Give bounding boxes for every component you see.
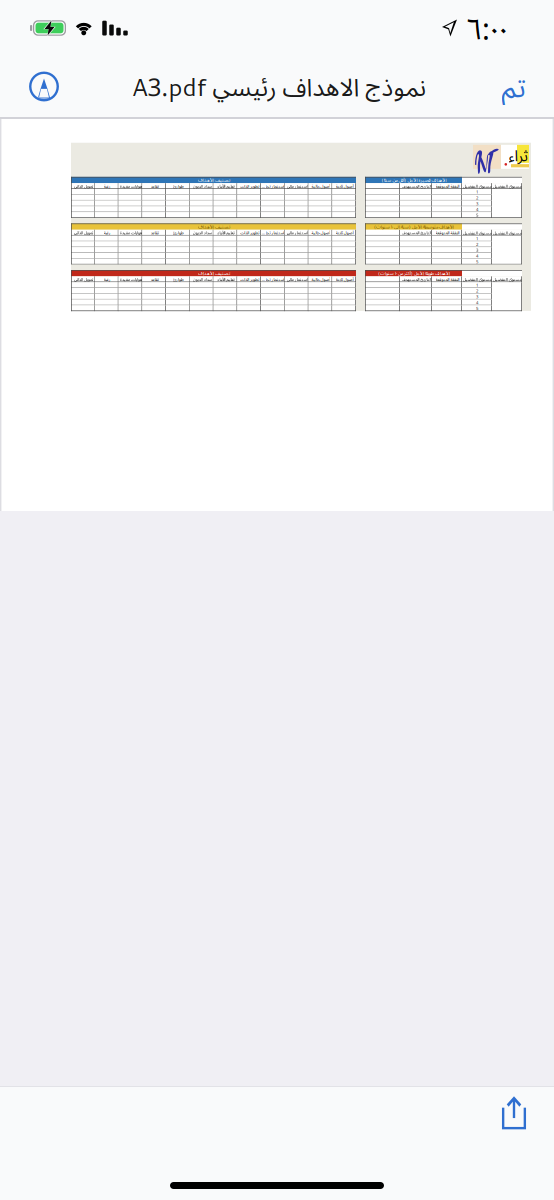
staticText: تطوير الذات xyxy=(240,183,259,189)
staticText: طوارئ xyxy=(172,230,183,235)
staticText: تم xyxy=(501,67,525,105)
staticText: 5 xyxy=(476,259,478,265)
staticText: تمويل الذاتي xyxy=(73,230,92,235)
staticText: تعليم الأبناء xyxy=(217,230,234,235)
staticText: تمويل الذاتي xyxy=(73,183,92,189)
staticText: مستوى التفضيل xyxy=(463,230,491,236)
staticText: 1 xyxy=(476,236,478,241)
staticText: تقاعد xyxy=(150,183,158,189)
staticText: مستوى التفضيل xyxy=(493,276,521,282)
staticText: مستوى التفضيل xyxy=(493,230,521,236)
staticText: تصنيف الأهداف xyxy=(197,270,229,276)
staticText: طوارئ xyxy=(172,183,183,189)
staticText: استثمار تجاري xyxy=(262,183,284,189)
staticText: استثمار مالي xyxy=(286,183,307,189)
staticText: رغبة xyxy=(103,230,110,235)
staticText: النفقة المتوقعة xyxy=(435,183,459,189)
staticText: النفقة المتوقعة xyxy=(435,230,459,235)
button[interactable]: Share xyxy=(488,1087,540,1139)
staticText: 3 xyxy=(476,247,478,253)
staticText: هوايات مفيدة xyxy=(119,276,141,282)
staticText: التاريخ المستهدف xyxy=(401,276,431,282)
staticText: 5 xyxy=(476,212,478,218)
staticText: ٦:٠٠ xyxy=(467,8,508,48)
staticText: مستوى التفضيل xyxy=(493,183,521,189)
staticText: الأهداف قصيرة الأجل (أقل من سنة) xyxy=(381,177,446,183)
staticText: التاريخ المستهدف xyxy=(401,183,431,189)
staticText: تمويل الذاتي xyxy=(73,276,92,282)
staticText: سداد الديون xyxy=(192,183,211,189)
staticText: 3 xyxy=(476,294,478,300)
staticText: تعليم الأبناء xyxy=(217,276,234,282)
staticText: الأهداف طويلة الأجل (أكثر من ١٠ سنوات) xyxy=(377,270,449,276)
staticText: النفقة المتوقعة xyxy=(435,276,459,282)
staticText: 5 xyxy=(476,305,478,311)
staticText: 4 xyxy=(476,253,478,259)
staticText: تطوير الذات xyxy=(240,230,259,235)
staticText: 1 xyxy=(476,189,478,195)
staticText: مستوى التفضيل xyxy=(463,183,491,189)
staticText: استثمار تجاري xyxy=(262,230,284,235)
staticText: استثمار تجاري xyxy=(262,276,284,282)
staticText: سداد الديون xyxy=(192,230,211,235)
staticText: تقاعد xyxy=(150,230,158,235)
button[interactable]: تم xyxy=(491,64,535,108)
staticText: مستوى التفضيل xyxy=(463,276,491,282)
staticText: هوايات مفيدة xyxy=(119,230,141,235)
staticText: 4 xyxy=(476,300,478,305)
staticText: تطوير الذات xyxy=(240,276,259,282)
staticText: 2 xyxy=(476,288,478,294)
staticText: تقاعد xyxy=(150,276,158,282)
staticText: تصنيف الأهداف xyxy=(197,223,229,230)
staticText: 1 xyxy=(476,282,478,288)
staticText: أصول ثابتة xyxy=(335,276,353,282)
button[interactable]: Markup xyxy=(22,64,66,108)
staticText: طوارئ xyxy=(172,276,183,282)
staticText: أصول حالية xyxy=(311,276,330,282)
staticText: 4 xyxy=(476,206,478,212)
staticText: 2 xyxy=(476,195,478,201)
staticText: سداد الديون xyxy=(192,276,211,282)
staticText: الأهداف متوسطة الأجل (سنة الى ١٠ سنوات) xyxy=(373,223,453,230)
staticText: أصول ثابتة xyxy=(335,230,353,235)
staticText: رغبة xyxy=(103,276,110,282)
staticText: 3 xyxy=(476,201,478,206)
staticText: التاريخ المستهدف xyxy=(401,230,431,235)
staticText: استثمار مالي xyxy=(286,230,307,235)
staticText: رغبة xyxy=(103,183,110,189)
staticText: تصنيف الأهداف xyxy=(197,177,229,183)
staticText: هوايات مفيدة xyxy=(119,183,141,189)
staticText: ثراء xyxy=(508,145,528,166)
staticText: تعليم الأبناء xyxy=(217,183,234,189)
staticText: أصول حالية xyxy=(311,183,330,189)
staticText: نموذج الاهداف رئيسي A3.pdf xyxy=(131,69,426,104)
staticText: 2 xyxy=(476,241,478,247)
staticText: أصول ثابتة xyxy=(335,183,353,189)
staticText: استثمار مالي xyxy=(286,276,307,282)
staticText: أصول حالية xyxy=(311,230,330,235)
